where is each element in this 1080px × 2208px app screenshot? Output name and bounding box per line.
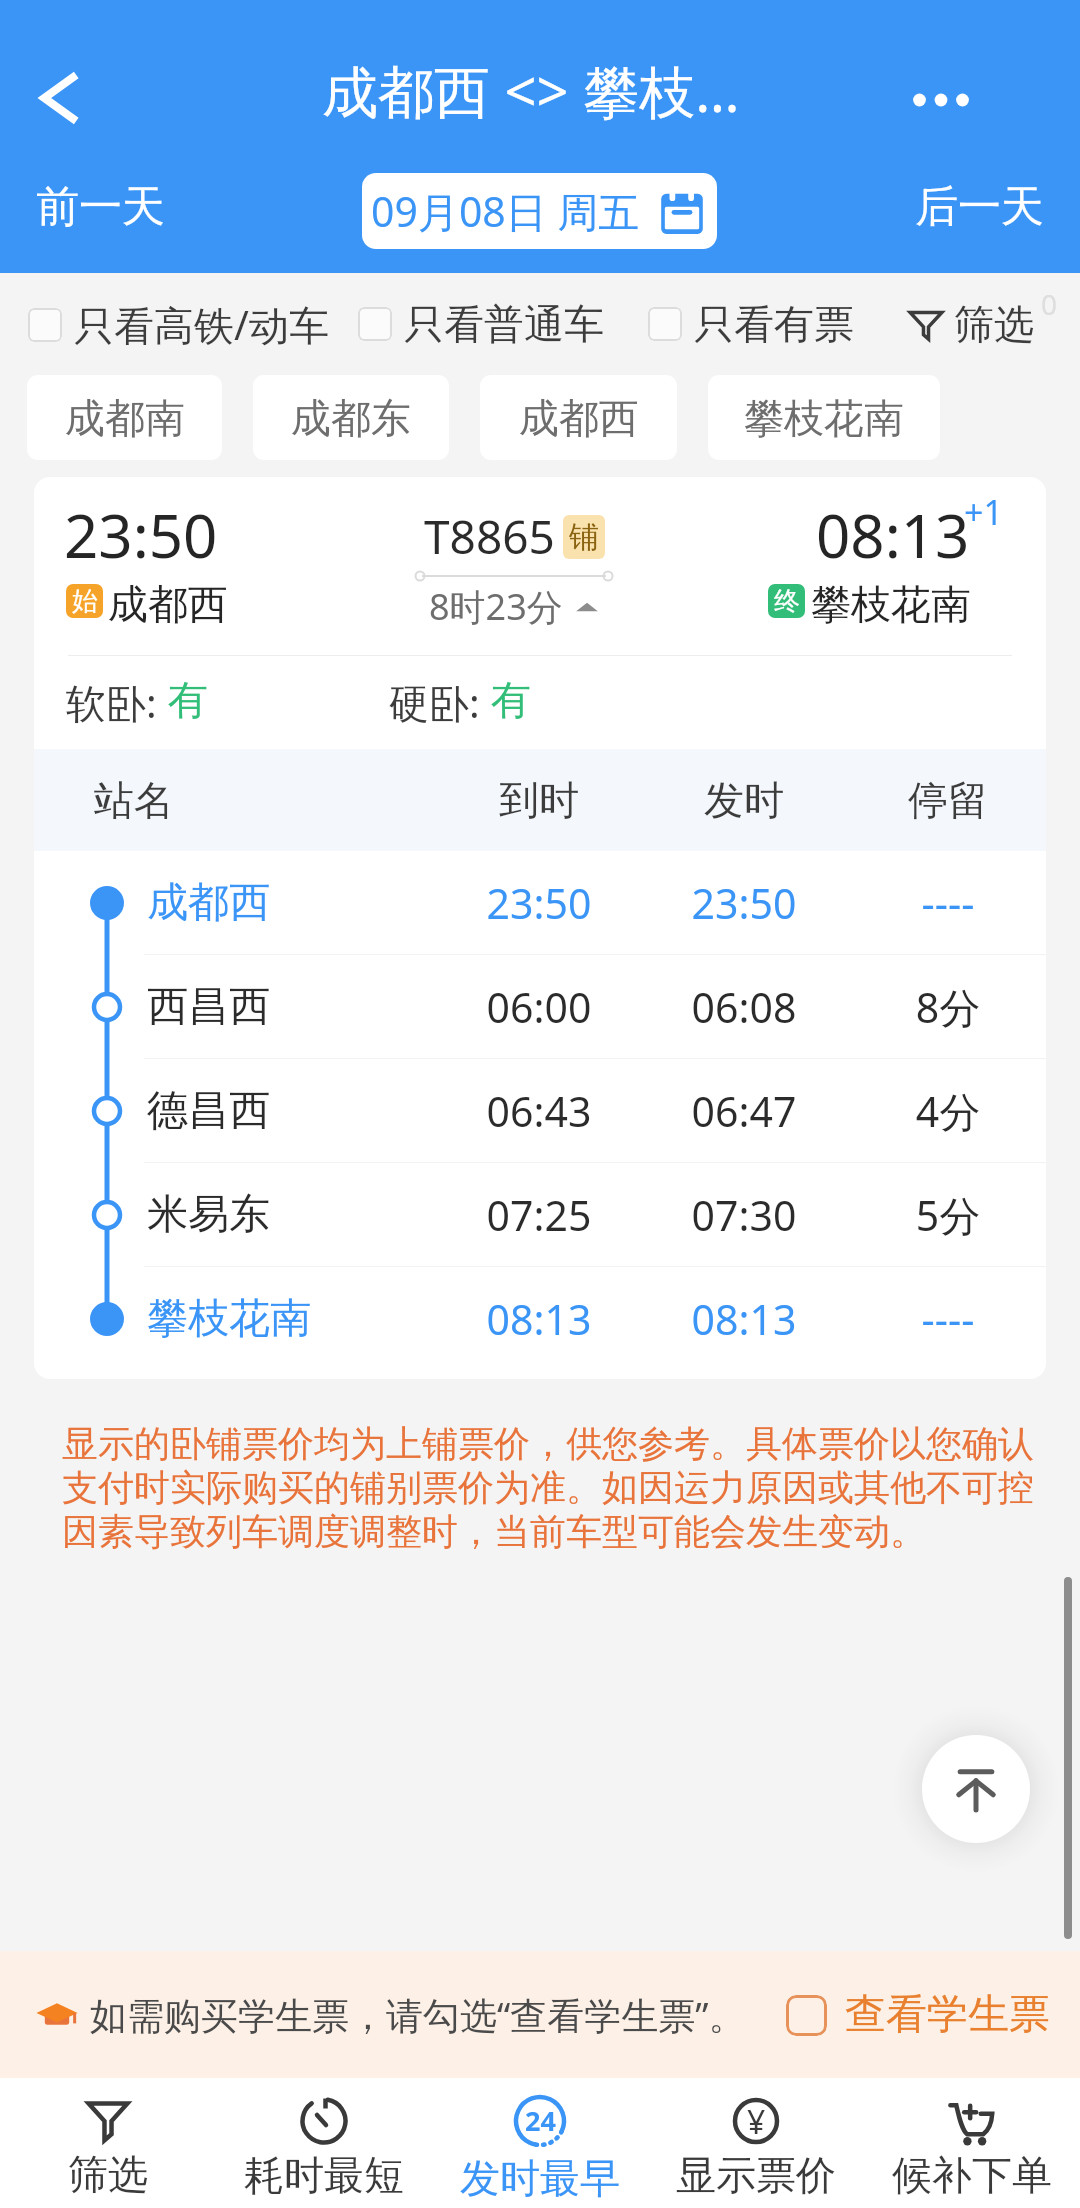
staticText: 发时最早 — [460, 2153, 620, 2203]
staticText: 只看普通车 — [404, 299, 604, 349]
staticText: 德昌西 — [147, 1085, 270, 1137]
staticText: 06:43 — [439, 1083, 639, 1139]
staticText: 铺 — [569, 518, 599, 556]
button[interactable]: 成都东 — [253, 375, 449, 460]
staticText: 只看高铁/动车 — [74, 297, 329, 352]
button[interactable]: 只看普通车 — [358, 299, 604, 349]
staticText: 5分 — [848, 1187, 1046, 1243]
button[interactable]: 候补下单 — [864, 2078, 1080, 2208]
staticText: ---- — [848, 1291, 1046, 1347]
staticText: 08:13 — [816, 494, 970, 576]
button[interactable]: 成都南 — [27, 375, 222, 460]
staticText: 成都西 — [108, 579, 228, 629]
staticText: 西昌西 — [147, 981, 270, 1033]
button[interactable]: 筛选 — [908, 299, 1034, 349]
staticText: 终 — [774, 585, 800, 618]
button[interactable]: 成都西 — [480, 375, 677, 460]
button[interactable]: Back — [14, 52, 106, 144]
staticText: 成都西 — [519, 393, 639, 443]
staticText: 有 — [491, 675, 531, 725]
button[interactable]: 前一天 — [26, 172, 175, 242]
staticText: 攀枝花南 — [811, 579, 971, 629]
button[interactable]: Scroll to top — [922, 1735, 1030, 1843]
staticText: 成都东 — [291, 393, 411, 443]
button[interactable]: 09月08日 周五 — [362, 173, 717, 249]
staticText: 0 — [1041, 285, 1058, 323]
staticText: 只看有票 — [694, 299, 854, 349]
staticText: 09月08日 周五 — [371, 183, 640, 239]
staticText: 始 — [72, 585, 98, 618]
button[interactable]: 筛选 — [0, 2078, 216, 2208]
staticText: 06:08 — [644, 979, 844, 1035]
staticText: 成都西 — [147, 877, 270, 929]
staticText: 筛选 — [68, 2149, 148, 2199]
staticText: 硬卧: — [389, 675, 491, 730]
staticText: 成都南 — [65, 393, 185, 443]
staticText: 成都西 <> 攀枝… — [322, 52, 740, 128]
staticText: ---- — [848, 875, 1046, 931]
staticText: 06:00 — [439, 979, 639, 1035]
staticText: 8分 — [848, 979, 1046, 1035]
staticText: 站名 — [94, 775, 174, 825]
staticText: 米易东 — [147, 1189, 270, 1241]
staticText: 前一天 — [36, 180, 165, 234]
button[interactable]: ¥ — [648, 2078, 864, 2208]
staticText: 到时 — [439, 775, 639, 825]
button[interactable]: 后一天 — [905, 172, 1054, 242]
staticText: 攀枝花南 — [744, 393, 904, 443]
button[interactable]: 查看学生票 — [786, 1989, 1050, 2041]
staticText: 4分 — [848, 1083, 1046, 1139]
staticText: 有 — [168, 675, 208, 725]
staticText: 08:13 — [439, 1291, 639, 1347]
staticText: 后一天 — [915, 180, 1044, 234]
staticText: 攀枝花南 — [147, 1293, 311, 1345]
staticText: 23:50 — [64, 494, 218, 576]
staticText: 如需购买学生票，请勾选“查看学生票”。 — [90, 1989, 746, 2040]
staticText: 软卧: — [66, 675, 168, 730]
button[interactable]: 只看有票 — [648, 299, 854, 349]
staticText: 24 — [525, 2102, 556, 2139]
staticText: 08:13 — [644, 1291, 844, 1347]
staticText: 停留 — [848, 775, 1046, 825]
staticText: 23:50 — [644, 875, 844, 931]
staticText: 23:50 — [439, 875, 639, 931]
staticText: 发时 — [644, 775, 844, 825]
button[interactable]: 只看高铁/动车 — [28, 297, 329, 352]
staticText: 耗时最短 — [244, 2150, 404, 2200]
button[interactable]: 耗时最短 — [216, 2078, 432, 2208]
staticText: T8865 — [424, 505, 555, 568]
staticText: 07:30 — [644, 1187, 844, 1243]
staticText: 候补下单 — [892, 2150, 1052, 2200]
staticText: 06:47 — [644, 1083, 844, 1139]
staticText: 显示票价 — [676, 2150, 836, 2200]
staticText: 查看学生票 — [845, 1989, 1050, 2041]
button[interactable]: More options — [895, 54, 987, 146]
button[interactable]: 攀枝花南 — [708, 375, 940, 460]
staticText: 07:25 — [439, 1187, 639, 1243]
staticText: 显示的卧铺票价均为上铺票价，供您参考。具体票价以您确认支付时实际购买的铺别票价为… — [62, 1421, 1040, 1555]
staticText: +1 — [964, 489, 1003, 535]
staticText: ¥ — [747, 2100, 766, 2144]
staticText: 8时23分 — [429, 582, 563, 631]
button[interactable]: 24 — [432, 2078, 648, 2208]
staticText: 筛选 — [954, 299, 1034, 349]
